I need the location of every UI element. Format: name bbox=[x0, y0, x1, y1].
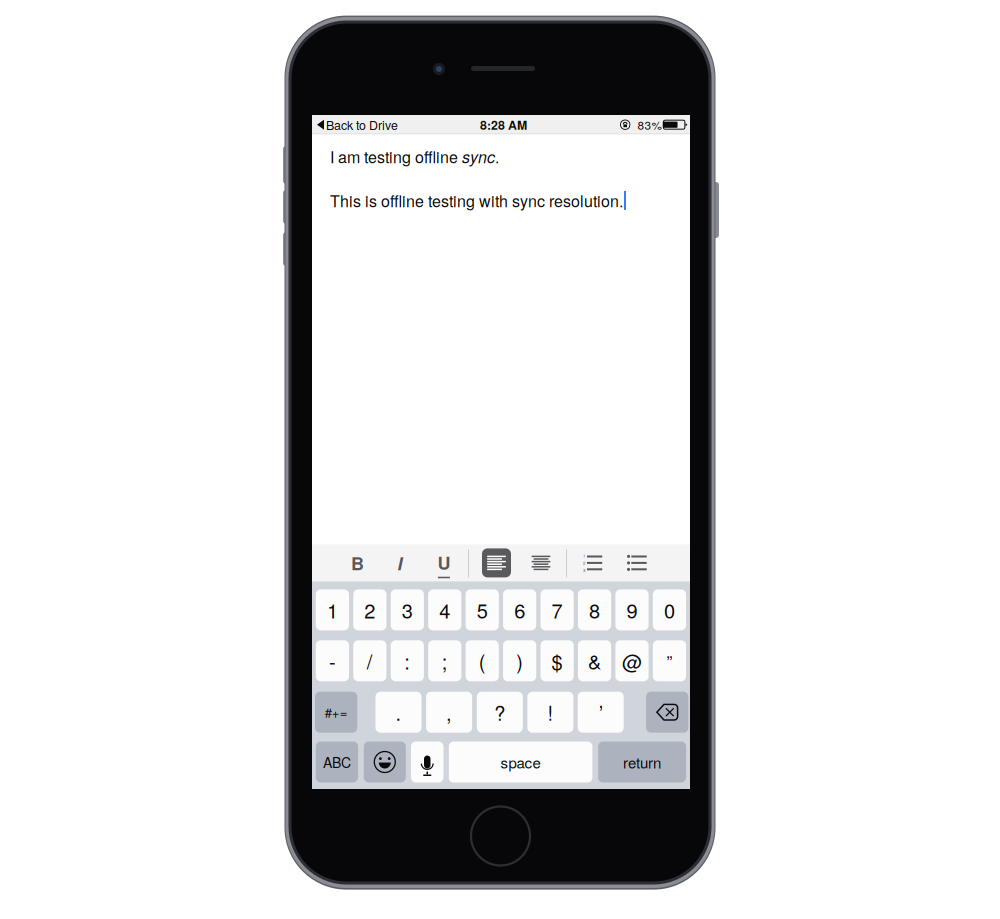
staticText: 3 bbox=[402, 596, 413, 624]
button[interactable]: ? bbox=[477, 692, 523, 733]
button[interactable]: ’ bbox=[578, 692, 624, 733]
staticText: 5 bbox=[477, 596, 488, 624]
button[interactable]: ( bbox=[466, 640, 499, 681]
staticText: This is offline testing with sync resolu… bbox=[330, 189, 623, 212]
staticText: Back to Drive bbox=[326, 116, 398, 134]
button[interactable]: 3 bbox=[391, 589, 424, 630]
button[interactable]: Delete bbox=[646, 692, 688, 733]
staticText: U bbox=[437, 550, 450, 575]
button[interactable]: Dictation bbox=[411, 741, 443, 782]
staticText: 8 bbox=[589, 596, 600, 624]
button[interactable]: Underline bbox=[428, 544, 460, 581]
button[interactable]: return bbox=[598, 741, 686, 782]
button[interactable]: 4 bbox=[428, 589, 461, 630]
button[interactable]: Align center bbox=[526, 544, 555, 581]
button[interactable]: - bbox=[316, 640, 349, 681]
staticText: I bbox=[398, 550, 403, 576]
button[interactable]: 1 bbox=[316, 589, 349, 630]
button[interactable]: Numbered list bbox=[583, 544, 602, 581]
staticText: I am testing offline sync. bbox=[330, 145, 499, 167]
staticText: : bbox=[404, 646, 410, 675]
button[interactable]: Italic bbox=[384, 544, 416, 581]
staticText: , bbox=[446, 698, 452, 726]
staticText: - bbox=[329, 646, 336, 675]
staticText: 8:28 AM bbox=[480, 116, 527, 133]
staticText: ’ bbox=[599, 698, 603, 726]
button[interactable]: 0 bbox=[653, 589, 686, 630]
staticText: / bbox=[367, 646, 373, 675]
button[interactable]: , bbox=[426, 692, 472, 733]
staticText: 4 bbox=[439, 596, 450, 624]
button[interactable]: ” bbox=[653, 640, 686, 681]
staticText: 83% bbox=[638, 116, 662, 133]
button[interactable]: Bulleted list bbox=[627, 544, 647, 581]
button[interactable]: ! bbox=[527, 692, 573, 733]
button[interactable]: 6 bbox=[503, 589, 536, 630]
button[interactable]: 5 bbox=[466, 589, 499, 630]
button[interactable]: Align left bbox=[482, 544, 511, 581]
button[interactable]: . bbox=[375, 692, 421, 733]
staticText: 9 bbox=[626, 596, 637, 624]
staticText: ” bbox=[666, 648, 672, 673]
button[interactable]: Back to Drive bbox=[312, 115, 472, 134]
staticText: ) bbox=[516, 646, 523, 675]
button[interactable]: @ bbox=[615, 640, 649, 681]
button[interactable]: 9 bbox=[615, 589, 649, 630]
staticText: $ bbox=[552, 646, 563, 675]
button[interactable]: space bbox=[449, 741, 592, 782]
button[interactable]: : bbox=[391, 640, 424, 681]
staticText: 1 bbox=[327, 596, 338, 624]
staticText: B bbox=[351, 550, 364, 576]
staticText: 0 bbox=[664, 596, 675, 624]
button[interactable]: 8 bbox=[578, 589, 611, 630]
button[interactable]: 7 bbox=[540, 589, 574, 630]
button[interactable]: Emoji bbox=[364, 741, 406, 782]
staticText: 2 bbox=[583, 560, 585, 566]
button[interactable]: #+= bbox=[315, 692, 357, 733]
staticText: @ bbox=[622, 646, 642, 675]
button[interactable]: & bbox=[578, 640, 611, 681]
staticText: ( bbox=[479, 646, 486, 675]
button[interactable]: $ bbox=[540, 640, 574, 681]
staticText: 2 bbox=[364, 596, 375, 624]
staticText: ; bbox=[442, 646, 448, 675]
button[interactable]: Bold bbox=[341, 544, 373, 581]
staticText: space bbox=[501, 751, 541, 773]
staticText: . bbox=[395, 698, 401, 726]
button[interactable]: ) bbox=[503, 640, 536, 681]
staticText: 1 bbox=[583, 552, 585, 559]
button[interactable]: ; bbox=[428, 640, 461, 681]
staticText: 6 bbox=[514, 596, 525, 624]
staticText: #+= bbox=[325, 703, 348, 721]
button[interactable]: 2 bbox=[353, 589, 386, 630]
staticText: ABC bbox=[323, 752, 351, 772]
button[interactable]: ABC bbox=[316, 741, 358, 782]
staticText: ! bbox=[547, 698, 553, 726]
staticText: return bbox=[623, 751, 661, 773]
staticText: 3 bbox=[583, 567, 585, 573]
staticText: 7 bbox=[552, 596, 563, 624]
button[interactable]: / bbox=[353, 640, 386, 681]
staticText: & bbox=[588, 646, 601, 675]
staticText: ? bbox=[494, 698, 505, 726]
